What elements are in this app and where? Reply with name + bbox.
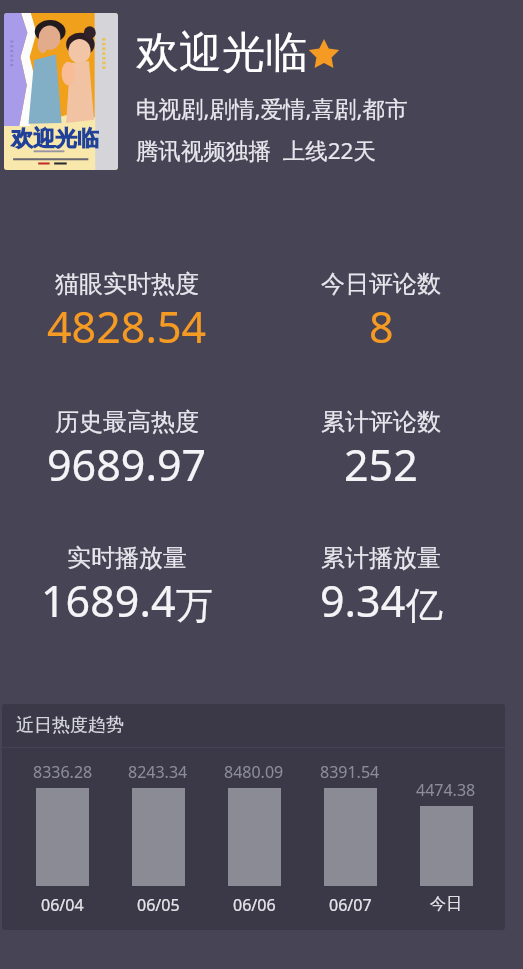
staticText: 近日热度趋势 xyxy=(16,714,124,737)
button[interactable]: 猫眼实时热度 xyxy=(0,269,254,358)
staticText: 今日 xyxy=(430,894,462,914)
staticText: 亿 xyxy=(406,582,443,629)
button[interactable]: 今日评论数 xyxy=(254,269,508,358)
staticText: 万 xyxy=(176,582,213,629)
staticText: 累计评论数 xyxy=(321,407,441,437)
staticText: 8336.28 xyxy=(33,761,93,783)
staticText: 06/06 xyxy=(233,894,276,916)
staticText: 4474.38 xyxy=(416,779,476,801)
button[interactable]: 收藏 xyxy=(308,38,340,70)
staticText: 06/07 xyxy=(329,894,372,916)
staticText: 猫眼实时热度 xyxy=(55,269,199,299)
staticText: 累计播放量 xyxy=(321,543,441,573)
staticText: 8480.09 xyxy=(224,761,284,783)
staticText: 电视剧,剧情,爱情,喜剧,都市 xyxy=(136,93,408,124)
staticText: 9689.97 xyxy=(47,435,207,494)
staticText: 8 xyxy=(369,297,394,356)
staticText: 252 xyxy=(344,435,418,494)
staticText: 今日评论数 xyxy=(321,269,441,299)
button[interactable]: 近日热度趋势 xyxy=(2,704,505,930)
staticText: 9.34 xyxy=(320,571,406,630)
staticText: 4828.54 xyxy=(47,297,207,356)
staticText: 06/04 xyxy=(41,894,84,916)
button[interactable]: 累计评论数 xyxy=(254,407,508,496)
button[interactable]: 历史最高热度 xyxy=(0,407,254,496)
staticText: 1689.4 xyxy=(41,571,176,630)
button[interactable]: 欢迎光临 海报 xyxy=(4,13,118,170)
staticText: 8391.54 xyxy=(320,761,380,783)
button[interactable]: 实时播放量 xyxy=(0,543,254,632)
button[interactable]: 欢迎光临 海报 xyxy=(4,13,513,170)
staticText: 06/05 xyxy=(137,894,180,916)
staticText: 8243.34 xyxy=(128,761,188,783)
staticText: 历史最高热度 xyxy=(55,407,199,437)
staticText: 欢迎光临 xyxy=(136,26,308,80)
button[interactable]: 累计播放量 xyxy=(254,543,508,632)
staticText: 腾讯视频独播 上线22天 xyxy=(136,135,376,166)
staticText: 欢迎光临 xyxy=(11,125,99,153)
staticText: 实时播放量 xyxy=(67,543,187,573)
